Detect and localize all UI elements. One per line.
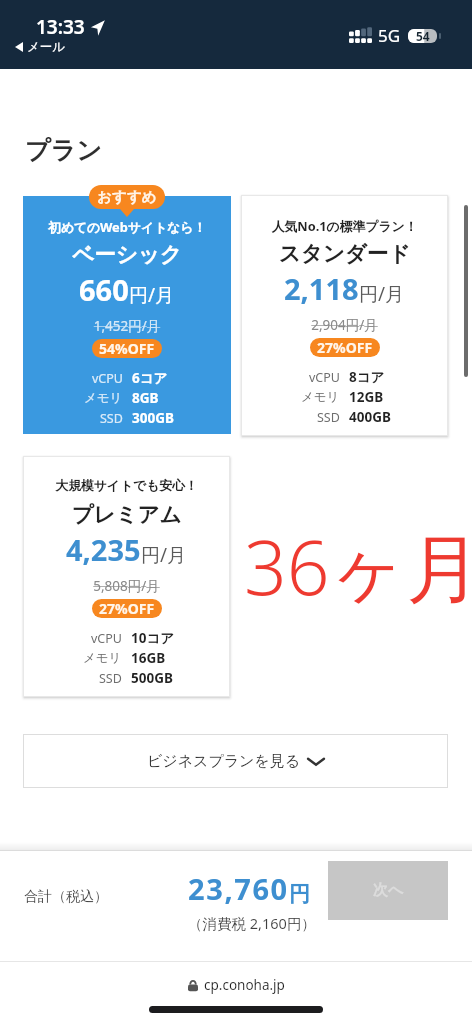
button[interactable]: 人気No.1の標準プラン！	[241, 195, 448, 436]
staticText: 2,904円/月	[241, 316, 448, 334]
staticText: スタンダード	[241, 240, 448, 267]
button[interactable]: 大規模サイトでも安心！	[23, 456, 230, 697]
staticText: おすすめ	[97, 188, 157, 206]
staticText: 次へ	[373, 881, 404, 900]
staticText: 27%OFF	[99, 599, 155, 618]
button[interactable]: メール	[15, 39, 66, 55]
staticText: 400GB	[349, 408, 391, 426]
staticText: 27%OFF	[317, 338, 373, 357]
staticText: 6コア	[132, 369, 168, 387]
staticText: 円	[289, 881, 310, 907]
staticText: 300GB	[132, 409, 174, 427]
staticText: SSD	[100, 410, 123, 427]
staticText: （消費税 2,160円）	[188, 913, 316, 933]
staticText: 36ヶ月	[244, 515, 472, 617]
button[interactable]: ビジネスプランを見る	[23, 734, 448, 788]
staticText: 10コア	[131, 629, 175, 647]
staticText: メール	[27, 39, 66, 55]
staticText: 8コア	[349, 368, 385, 386]
staticText: 2,118	[284, 269, 359, 308]
staticText: vCPU	[92, 370, 123, 387]
staticText: 5,808円/月	[23, 577, 230, 595]
staticText: 12GB	[349, 388, 384, 406]
staticText: 大規模サイトでも安心！	[23, 478, 230, 494]
staticText: プレミアム	[23, 501, 230, 528]
staticText: SSD	[99, 670, 122, 687]
staticText: ビジネスプランを見る	[147, 752, 301, 771]
staticText: 16GB	[131, 649, 166, 667]
staticText: 円	[359, 283, 378, 307]
staticText: vCPU	[91, 630, 122, 647]
staticText: /月	[148, 282, 175, 308]
staticText: メモリ	[83, 650, 122, 666]
staticText: メモリ	[84, 390, 123, 406]
staticText: 4,235	[66, 530, 141, 569]
staticText: 円	[129, 284, 148, 308]
staticText: 1,452円/月	[23, 317, 231, 335]
staticText: SSD	[317, 409, 340, 426]
staticText: プラン	[25, 135, 102, 166]
staticText: 54	[416, 28, 430, 44]
staticText: 13:33	[36, 14, 85, 40]
staticText: 人気No.1の標準プラン！	[241, 217, 448, 234]
staticText: /月	[378, 281, 405, 307]
staticText: cp.conoha.jp	[204, 976, 285, 994]
staticText: /月	[160, 542, 187, 568]
button[interactable]: 初めてのWebサイトなら！	[23, 196, 231, 434]
staticText: vCPU	[309, 369, 340, 386]
staticText: 初めてのWebサイトなら！	[23, 218, 231, 235]
staticText: 5G	[378, 24, 401, 47]
staticText: 500GB	[131, 669, 173, 687]
staticText: 合計（税込）	[24, 888, 108, 906]
staticText: ベーシック	[23, 241, 231, 268]
staticText: 8GB	[132, 389, 159, 407]
button[interactable]: cp.conoha.jp	[0, 966, 472, 1004]
staticText: 54%OFF	[99, 339, 155, 358]
staticText: 660	[79, 270, 129, 309]
staticText: 円	[141, 544, 160, 568]
staticText: 23,760	[188, 869, 289, 908]
staticText: メモリ	[301, 389, 340, 405]
